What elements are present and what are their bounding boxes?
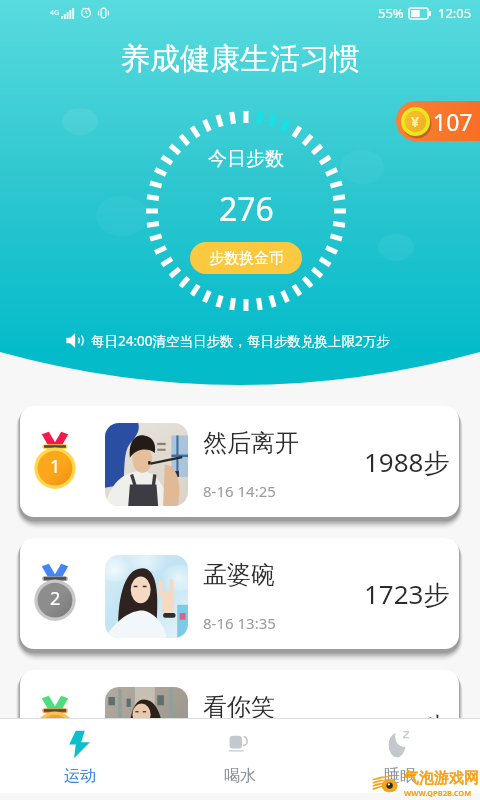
staticText: 1988步 (364, 444, 450, 480)
staticText: ¥ (411, 112, 420, 131)
button[interactable]: 3 (20, 670, 459, 781)
staticText: 喝水 (224, 766, 256, 786)
staticText: 276 (219, 187, 274, 231)
button[interactable]: 1 (20, 406, 459, 517)
staticText: 每日24:00清空当日步数，每日步数兑换上限2万步 (91, 332, 390, 350)
button[interactable]: 运动 (0, 719, 160, 793)
staticText: 3 (50, 718, 61, 743)
staticText: 步数换金币 (209, 249, 284, 268)
staticText: 今日步数 (208, 147, 284, 171)
staticText: 1566步 (364, 708, 450, 744)
staticText: 8-16 13:35 (203, 613, 276, 633)
button[interactable]: 2 (20, 538, 459, 649)
staticText: 运动 (64, 766, 96, 786)
staticText: 4G (50, 8, 60, 18)
staticText: 然后离开 (203, 428, 299, 458)
button[interactable]: ¥ (396, 101, 480, 141)
button[interactable]: 睡眠 (320, 719, 480, 793)
button[interactable]: 喝水 (160, 719, 320, 793)
staticText: 孟婆碗 (203, 560, 275, 590)
staticText: 8-16 14:25 (203, 481, 276, 501)
staticText: WWW.QPB2B.COM (404, 788, 472, 798)
staticText: 55% (378, 4, 404, 22)
staticText: 1 (50, 454, 61, 479)
staticText: 1723步 (364, 576, 450, 612)
staticText: 12:05 (438, 4, 472, 22)
staticText: 睡眠 (384, 766, 416, 786)
staticText: 养成健康生活习惯 (120, 40, 360, 78)
staticText: 看你笑 (203, 692, 275, 722)
staticText: 2 (50, 586, 61, 611)
button[interactable]: 步数换金币 (190, 242, 302, 274)
staticText: 8-16 12:05 (203, 745, 276, 765)
staticText: 气泡游戏网 (404, 769, 479, 788)
staticText: 107 (433, 106, 473, 137)
